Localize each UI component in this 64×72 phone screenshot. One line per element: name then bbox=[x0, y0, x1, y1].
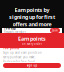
staticText: Sign up bbox=[26, 64, 37, 67]
staticText: offers and more bbox=[12, 20, 51, 28]
staticText: on every order bbox=[22, 42, 42, 46]
staticText: Earn points by bbox=[14, 6, 49, 13]
staticText: Sign up and earn points on bbox=[3, 51, 42, 54]
staticText: Rewards member bbox=[4, 30, 26, 34]
staticText: Join bbox=[52, 29, 58, 32]
staticText: every purchase you make. bbox=[3, 55, 36, 59]
button[interactable]: Join bbox=[50, 28, 60, 33]
staticText: TPH RED bbox=[4, 27, 16, 30]
staticText: signing up for first bbox=[9, 13, 55, 21]
staticText: Redeem for free food. bbox=[3, 60, 36, 63]
staticText: 100 points bbox=[3, 46, 19, 50]
staticText: Earn points bbox=[18, 35, 46, 42]
button[interactable]: Sign up bbox=[3, 63, 61, 68]
